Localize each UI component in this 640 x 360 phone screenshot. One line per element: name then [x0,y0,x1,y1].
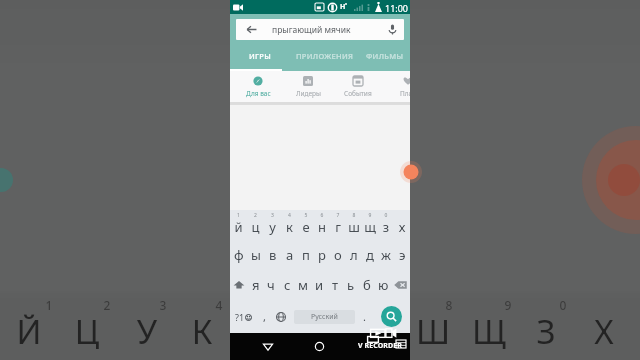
button[interactable]: 5 [298,210,314,240]
button[interactable]: р [314,240,330,270]
button[interactable]: ч [263,270,279,300]
button[interactable]: Home [307,333,331,360]
staticText: с [284,276,291,294]
button[interactable]: 2 [247,210,264,240]
staticText: Плат [400,89,410,98]
button[interactable]: п [298,240,314,270]
staticText: ш [346,218,362,236]
button[interactable]: в [264,240,281,270]
button[interactable]: 0 [378,210,394,240]
staticText: г [330,218,346,236]
button[interactable]: Русский [294,310,355,324]
button[interactable]: 8 [346,210,362,240]
staticText: ф [234,246,244,264]
staticText: 2 [247,212,264,219]
button[interactable]: Лидеры [283,71,333,102]
staticText: а [286,246,294,264]
staticText: 0 [555,297,571,313]
button[interactable]: Back [256,333,280,360]
staticText: б [363,276,371,294]
staticText: 9 [362,212,378,219]
button[interactable]: ИГРЫ [230,40,290,71]
button[interactable]: т [327,270,343,300]
staticText: Х [588,309,620,354]
button[interactable]: Search [373,300,410,333]
staticText: Лидеры [296,89,321,98]
button[interactable]: ФИЛЬМЫ [360,40,410,71]
button[interactable]: ПРИЛОЖЕНИЯ [290,40,360,71]
staticText: 11:00 [385,2,409,14]
staticText: у [264,218,281,236]
button[interactable]: Backspace [391,270,410,300]
staticText: ФИЛЬМЫ [366,51,404,61]
button[interactable]: ?1 [230,300,256,333]
button[interactable]: м [295,270,311,300]
button[interactable]: и [311,270,327,300]
staticText: Ш [416,309,448,354]
button[interactable]: о [330,240,346,270]
staticText: ю [378,276,389,294]
button[interactable]: д [362,240,378,270]
staticText: 3 [155,297,171,313]
button[interactable]: а [281,240,298,270]
staticText: 7 [330,212,346,219]
button[interactable]: Change language [272,300,289,333]
staticText: ы [251,246,261,264]
staticText: 4 [281,212,298,219]
staticText: ч [267,276,275,294]
staticText: Щ [472,309,504,354]
button[interactable]: с [279,270,295,300]
button[interactable]: , [256,300,272,333]
staticText: з [378,218,394,236]
button[interactable]: Shift [230,270,248,300]
button[interactable]: 4 [281,210,298,240]
staticText: э [399,246,406,264]
staticText: Для вас [246,89,271,98]
staticText: 4 [211,297,227,313]
button[interactable]: Для вас [233,71,283,102]
staticText: и [315,276,324,294]
staticText: о [334,246,342,264]
button[interactable]: 6 [314,210,330,240]
button[interactable]: Recents [358,333,382,360]
staticText: ц [247,218,264,236]
button[interactable]: х [394,210,410,240]
staticText: щ [362,218,378,236]
button[interactable]: Voice search [380,19,404,40]
button[interactable]: ю [375,270,391,300]
staticText: ИГРЫ [249,51,271,61]
staticText: 3 [264,212,281,219]
staticText: р [318,246,326,264]
button[interactable]: ы [247,240,264,270]
button[interactable]: ф [230,240,247,270]
button[interactable]: э [394,240,410,270]
staticText: м [298,276,308,294]
button[interactable]: . [355,300,373,333]
button[interactable]: л [346,240,362,270]
button[interactable]: 1 [230,210,247,240]
staticText: ПРИЛОЖЕНИЯ [296,51,354,61]
staticText: х [394,218,410,236]
button[interactable]: 7 [330,210,346,240]
staticText: V RECORDER [358,341,403,351]
button[interactable]: События [333,71,383,102]
button[interactable]: 9 [362,210,378,240]
button[interactable]: ж [378,240,394,270]
button[interactable]: Back [236,19,266,40]
staticText: д [366,246,374,264]
button[interactable]: я [248,270,263,300]
staticText: 1 [230,212,247,219]
staticText: л [350,246,358,264]
staticText: , [263,309,266,324]
staticText: ж [381,246,391,264]
staticText: Й [13,309,45,354]
staticText: ь [347,276,355,294]
staticText: 8 [441,297,457,313]
button[interactable]: 3 [264,210,281,240]
button[interactable]: Back [236,19,404,40]
staticText: п [302,246,310,264]
button[interactable]: ь [343,270,359,300]
staticText: 5 [298,212,314,219]
button[interactable]: Плат [383,71,410,102]
button[interactable]: б [359,270,375,300]
